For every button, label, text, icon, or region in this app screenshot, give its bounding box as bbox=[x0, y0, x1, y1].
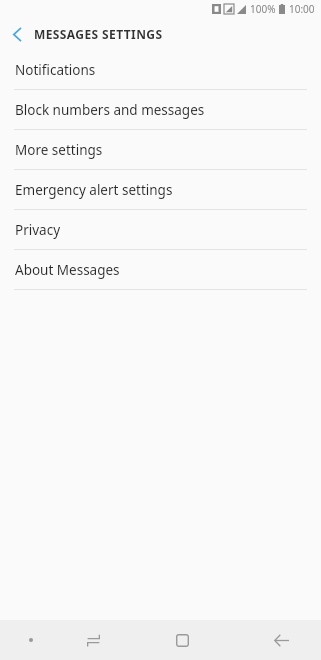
staticText: 10:00 bbox=[289, 2, 315, 16]
button[interactable]: Back bbox=[241, 620, 321, 660]
staticText: MESSAGES SETTINGS bbox=[34, 26, 163, 42]
button[interactable]: Notifications bbox=[0, 50, 321, 89]
staticText: Block numbers and messages bbox=[15, 101, 205, 119]
button[interactable]: Home bbox=[124, 620, 241, 660]
staticText: Emergency alert settings bbox=[15, 181, 173, 199]
button[interactable]: Back bbox=[0, 18, 34, 50]
button[interactable]: About Messages bbox=[0, 250, 321, 289]
button[interactable]: Privacy bbox=[0, 210, 321, 249]
button[interactable]: More settings bbox=[0, 130, 321, 169]
staticText: More settings bbox=[15, 141, 103, 159]
button[interactable]: Emergency alert settings bbox=[0, 170, 321, 209]
button[interactable]: Recent apps bbox=[62, 620, 124, 660]
staticText: About Messages bbox=[15, 261, 120, 279]
staticText: 100% bbox=[250, 2, 276, 16]
staticText: Notifications bbox=[15, 61, 96, 79]
button[interactable]: Block numbers and messages bbox=[0, 90, 321, 129]
staticText: Privacy bbox=[15, 221, 61, 239]
